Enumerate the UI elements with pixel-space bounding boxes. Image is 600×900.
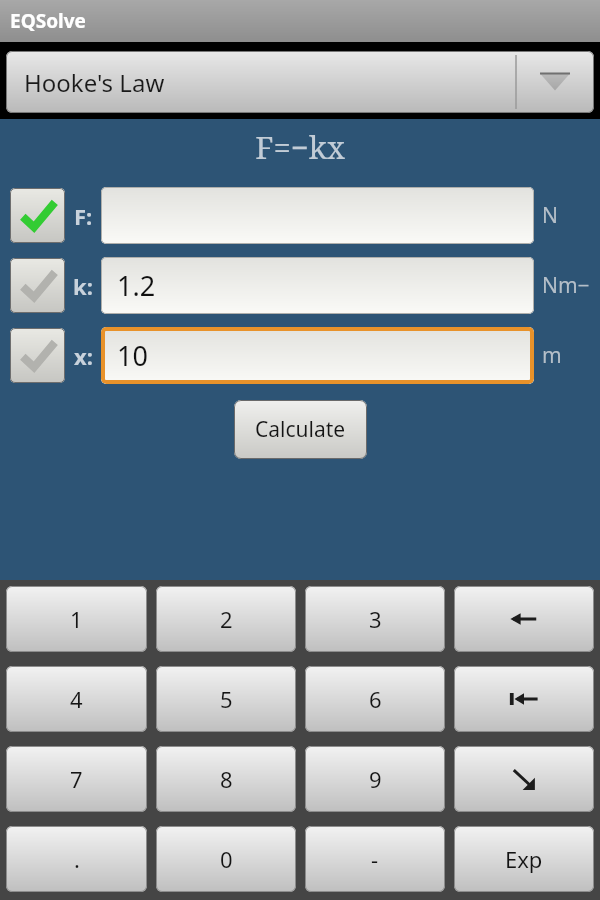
button[interactable]: 0 <box>156 826 296 892</box>
button[interactable]: 7 <box>6 746 147 812</box>
staticText: Hooke's Law <box>24 66 516 99</box>
staticText: m <box>542 341 562 370</box>
button[interactable]: Exp <box>454 826 594 892</box>
staticText: . <box>74 844 80 874</box>
button[interactable]: 6 <box>305 666 445 732</box>
staticText: 0 <box>220 844 233 874</box>
button[interactable]: Backspace <box>454 586 594 652</box>
staticText: Nm−1 <box>542 271 600 300</box>
staticText: 4 <box>70 684 83 714</box>
staticText: 6 <box>369 684 382 714</box>
staticText: 9 <box>369 764 382 794</box>
staticText: 10 <box>117 337 148 374</box>
staticText: 1 <box>70 604 83 634</box>
button[interactable]: - <box>305 826 445 892</box>
staticText: 2 <box>220 604 233 634</box>
staticText: Calculate <box>255 415 346 444</box>
button[interactable]: Calculate <box>234 400 367 459</box>
staticText: x: <box>74 341 93 371</box>
staticText: 8 <box>220 764 233 794</box>
staticText: - <box>371 844 379 874</box>
staticText: N <box>542 201 558 230</box>
staticText: EQSolve <box>10 8 86 34</box>
button[interactable] <box>101 187 534 244</box>
button[interactable]: 8 <box>156 746 296 812</box>
staticText: 7 <box>70 764 83 794</box>
button[interactable]: 1.2 <box>101 257 534 314</box>
button[interactable]: 4 <box>6 666 147 732</box>
button[interactable]: 3 <box>305 586 445 652</box>
button[interactable]: 10 <box>101 327 534 384</box>
button[interactable]: Hooke's Law <box>6 51 594 113</box>
button[interactable]: 9 <box>305 746 445 812</box>
staticText: Exp <box>505 844 543 874</box>
button[interactable]: . <box>6 826 147 892</box>
staticText: 1.2 <box>117 267 156 304</box>
staticText: k: <box>73 271 93 301</box>
staticText: 5 <box>220 684 233 714</box>
button[interactable]: 2 <box>156 586 296 652</box>
staticText: F: <box>74 201 93 231</box>
button[interactable]: Next field <box>454 746 594 812</box>
button[interactable]: Toggle x: <box>10 328 65 383</box>
staticText: 3 <box>369 604 382 634</box>
button[interactable]: 5 <box>156 666 296 732</box>
button[interactable]: Toggle F: <box>10 188 65 243</box>
button[interactable]: 1 <box>6 586 147 652</box>
button[interactable]: Clear <box>454 666 594 732</box>
button[interactable]: Toggle k: <box>10 258 65 313</box>
staticText: F=−kx <box>255 126 345 168</box>
